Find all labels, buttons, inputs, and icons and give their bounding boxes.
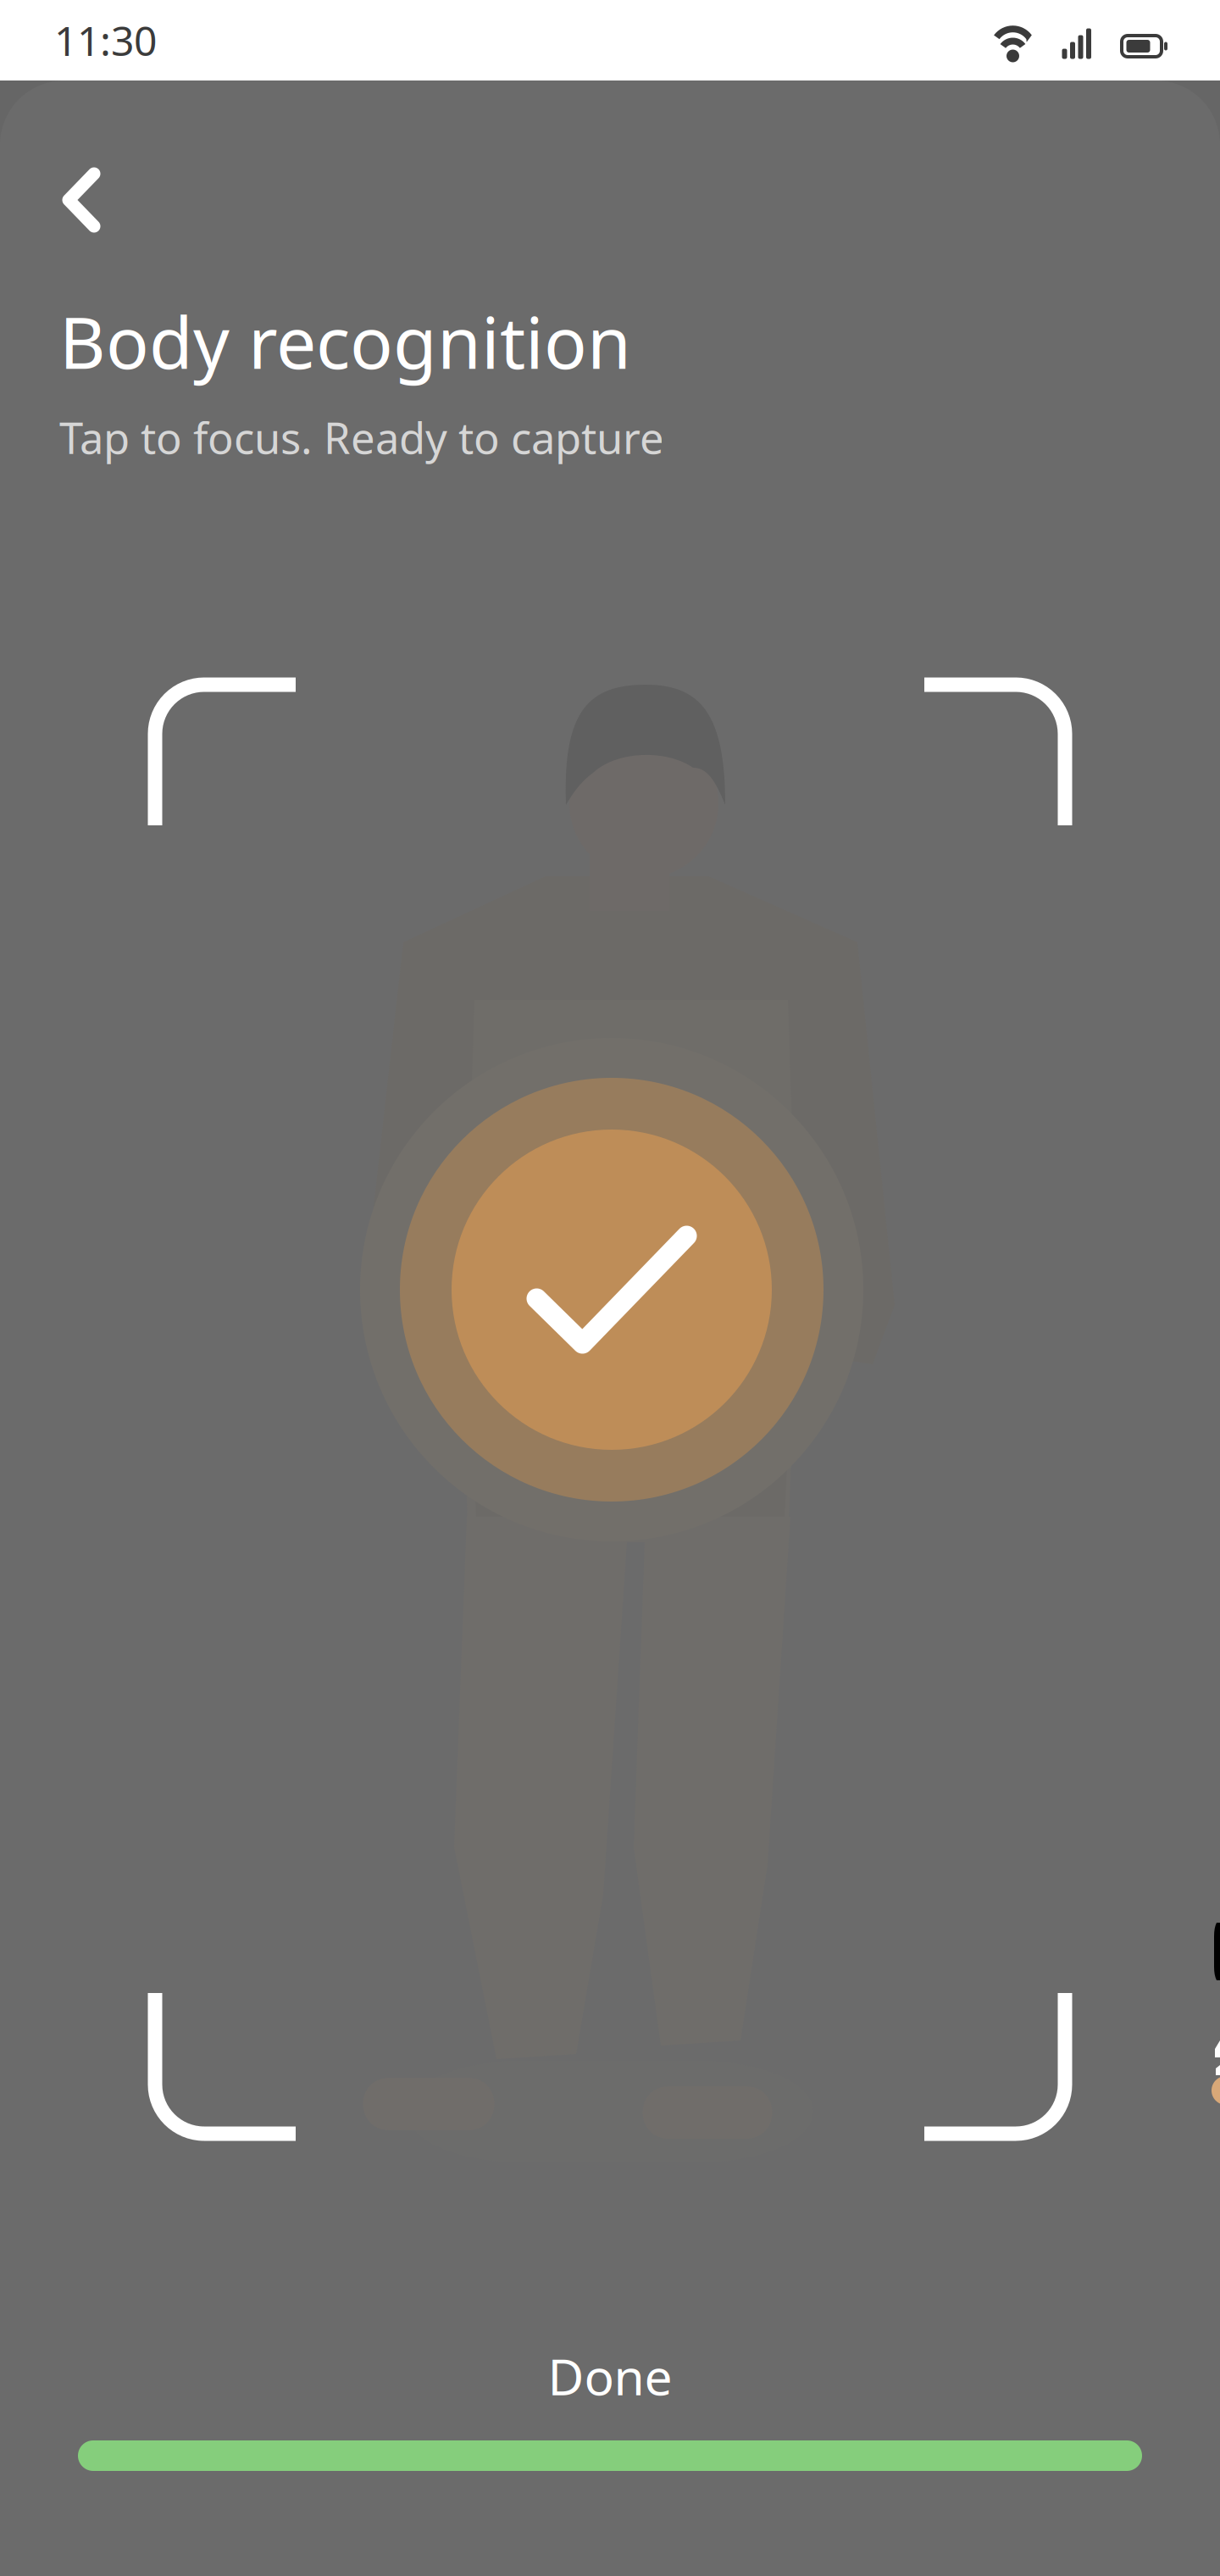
staticText: Body recognition	[59, 294, 631, 389]
staticText: 11:30	[54, 13, 157, 67]
staticText: Done	[548, 2343, 672, 2409]
button[interactable]: Back	[43, 155, 119, 245]
button[interactable]: Done	[0, 2335, 1220, 2417]
staticText: Tap to focus. Ready to capture	[59, 409, 664, 466]
